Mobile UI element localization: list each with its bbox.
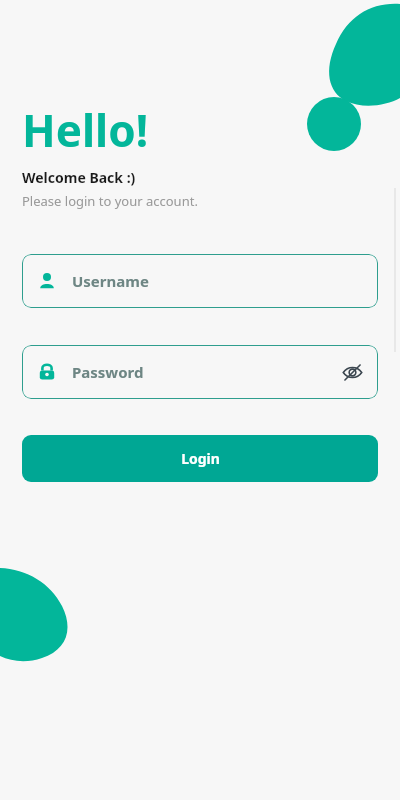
staticText: Please login to your account. xyxy=(22,192,198,210)
staticText: Hello! xyxy=(22,100,149,160)
staticText: Login xyxy=(181,449,220,468)
staticText: Username xyxy=(72,271,149,291)
button[interactable]: Toggle password visibility xyxy=(340,360,364,384)
button[interactable]: Login xyxy=(22,435,378,482)
button[interactable]: Username xyxy=(22,254,378,308)
staticText: Password xyxy=(72,362,144,382)
button[interactable]: Password xyxy=(22,345,378,399)
staticText: Welcome Back :) xyxy=(22,168,136,187)
